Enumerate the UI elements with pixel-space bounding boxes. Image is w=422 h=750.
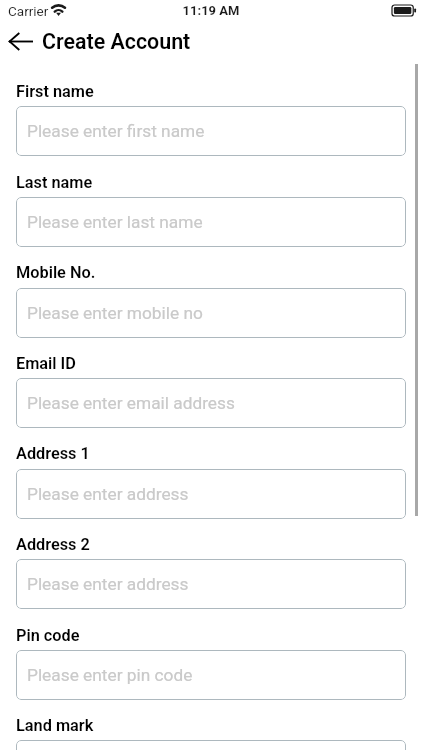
staticText: Please enter mobile no	[27, 303, 203, 323]
staticText: Address 2	[16, 535, 90, 554]
staticText: 11:19 AM	[0, 3, 422, 18]
button[interactable]: Please enter land mark	[16, 740, 406, 750]
staticText: Please enter last name	[27, 212, 203, 232]
staticText: Please enter pin code	[27, 665, 193, 685]
button[interactable]: Please enter address	[16, 469, 406, 519]
staticText: Mobile No.	[16, 263, 96, 282]
staticText: Please enter address	[27, 574, 189, 594]
button[interactable]: Please enter address	[16, 559, 406, 609]
staticText: Carrier	[8, 3, 49, 19]
button[interactable]: Please enter last name	[16, 197, 406, 247]
staticText: Please enter first name	[27, 121, 205, 141]
staticText: Address 1	[16, 444, 90, 463]
staticText: Land mark	[16, 716, 94, 735]
staticText: Email ID	[16, 354, 76, 373]
staticText: Please enter email address	[27, 393, 235, 413]
staticText: Last name	[16, 173, 93, 192]
button[interactable]: Please enter email address	[16, 378, 406, 428]
staticText: Please enter address	[27, 484, 189, 504]
staticText: First name	[16, 82, 94, 101]
button[interactable]: Please enter mobile no	[16, 288, 406, 338]
staticText: Pin code	[16, 626, 80, 645]
staticText: Create Account	[42, 29, 191, 54]
button[interactable]: Please enter first name	[16, 106, 406, 156]
button[interactable]: Please enter pin code	[16, 650, 406, 700]
button[interactable]: Back	[0, 24, 38, 58]
